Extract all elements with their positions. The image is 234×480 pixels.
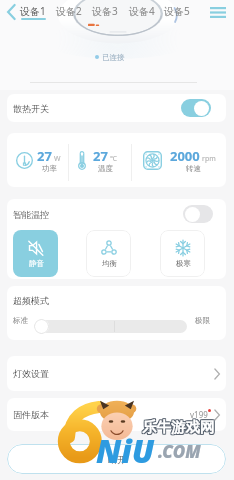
staticText: NiU xyxy=(96,429,155,473)
staticText: 乐牛游戏网 xyxy=(143,419,216,437)
staticText: 转速 xyxy=(186,164,201,173)
button[interactable]: 设备2 xyxy=(52,0,86,22)
staticText: 均衡 xyxy=(102,259,117,268)
staticText: 乐牛游戏网 xyxy=(143,418,216,436)
staticText: 设备2 xyxy=(56,4,82,18)
staticText: 极寒 xyxy=(176,259,191,268)
button[interactable]: Menu xyxy=(206,1,230,23)
button[interactable]: 设备1 xyxy=(16,0,50,22)
staticText: 功率 xyxy=(42,164,57,173)
staticText: 乐牛游戏网 xyxy=(141,417,214,435)
staticText: 设备5 xyxy=(164,4,190,18)
staticText: 2000 xyxy=(170,147,200,165)
button[interactable]: 设备4 xyxy=(125,0,159,22)
staticText: 灯效设置 xyxy=(13,368,49,379)
staticText: 乐牛游戏网 xyxy=(141,418,214,436)
staticText: 已连接 xyxy=(102,53,125,61)
staticText: 乐牛游戏网 xyxy=(142,419,215,437)
staticText: 设备4 xyxy=(129,4,155,18)
staticText: ℃ xyxy=(110,154,117,164)
button[interactable]: 2000 xyxy=(143,145,216,175)
staticText: 固件版本 xyxy=(13,409,49,420)
button[interactable]: 设备3 xyxy=(88,0,122,22)
staticText: 智能温控 xyxy=(13,209,49,220)
staticText: 静音 xyxy=(29,259,44,268)
button[interactable]: Turn on xyxy=(183,205,213,223)
staticText: 温度 xyxy=(98,164,113,173)
button[interactable]: 极寒 xyxy=(160,230,205,277)
staticText: 极限 xyxy=(195,316,210,325)
staticText: 乐牛游戏网 xyxy=(141,419,214,437)
button[interactable]: 散热开关 xyxy=(7,94,226,122)
staticText: 乐牛游戏网 xyxy=(143,417,216,435)
staticText: 散热开关 xyxy=(13,103,49,114)
staticText: W xyxy=(54,154,61,164)
button[interactable]: 静音 xyxy=(13,230,58,277)
button[interactable]: Back xyxy=(0,1,22,23)
button[interactable]: 断开 xyxy=(7,444,226,474)
button[interactable]: 27 xyxy=(16,145,61,175)
staticText: 乐牛游戏网 xyxy=(142,418,215,436)
staticText: 27 xyxy=(93,147,108,165)
button[interactable]: 27 xyxy=(77,145,117,175)
button[interactable]: 均衡 xyxy=(86,230,131,277)
staticText: rpm xyxy=(202,154,216,164)
button[interactable]: 固件版本 xyxy=(7,398,226,431)
staticText: 标准 xyxy=(13,316,28,325)
staticText: 乐牛游戏网 xyxy=(142,417,215,435)
staticText: 超频模式 xyxy=(13,295,49,306)
button[interactable]: 灯效设置 xyxy=(7,356,226,391)
staticText: .COM xyxy=(158,440,201,463)
staticText: 设备1 xyxy=(20,4,46,18)
staticText: v199 xyxy=(190,409,208,420)
staticText: 设备3 xyxy=(92,4,118,18)
button[interactable]: Overclock slider xyxy=(35,320,187,333)
button[interactable]: 设备5 xyxy=(160,0,194,22)
staticText: 27 xyxy=(37,147,52,165)
button[interactable]: Turn off xyxy=(181,99,211,117)
staticText: 断开 xyxy=(108,454,126,465)
